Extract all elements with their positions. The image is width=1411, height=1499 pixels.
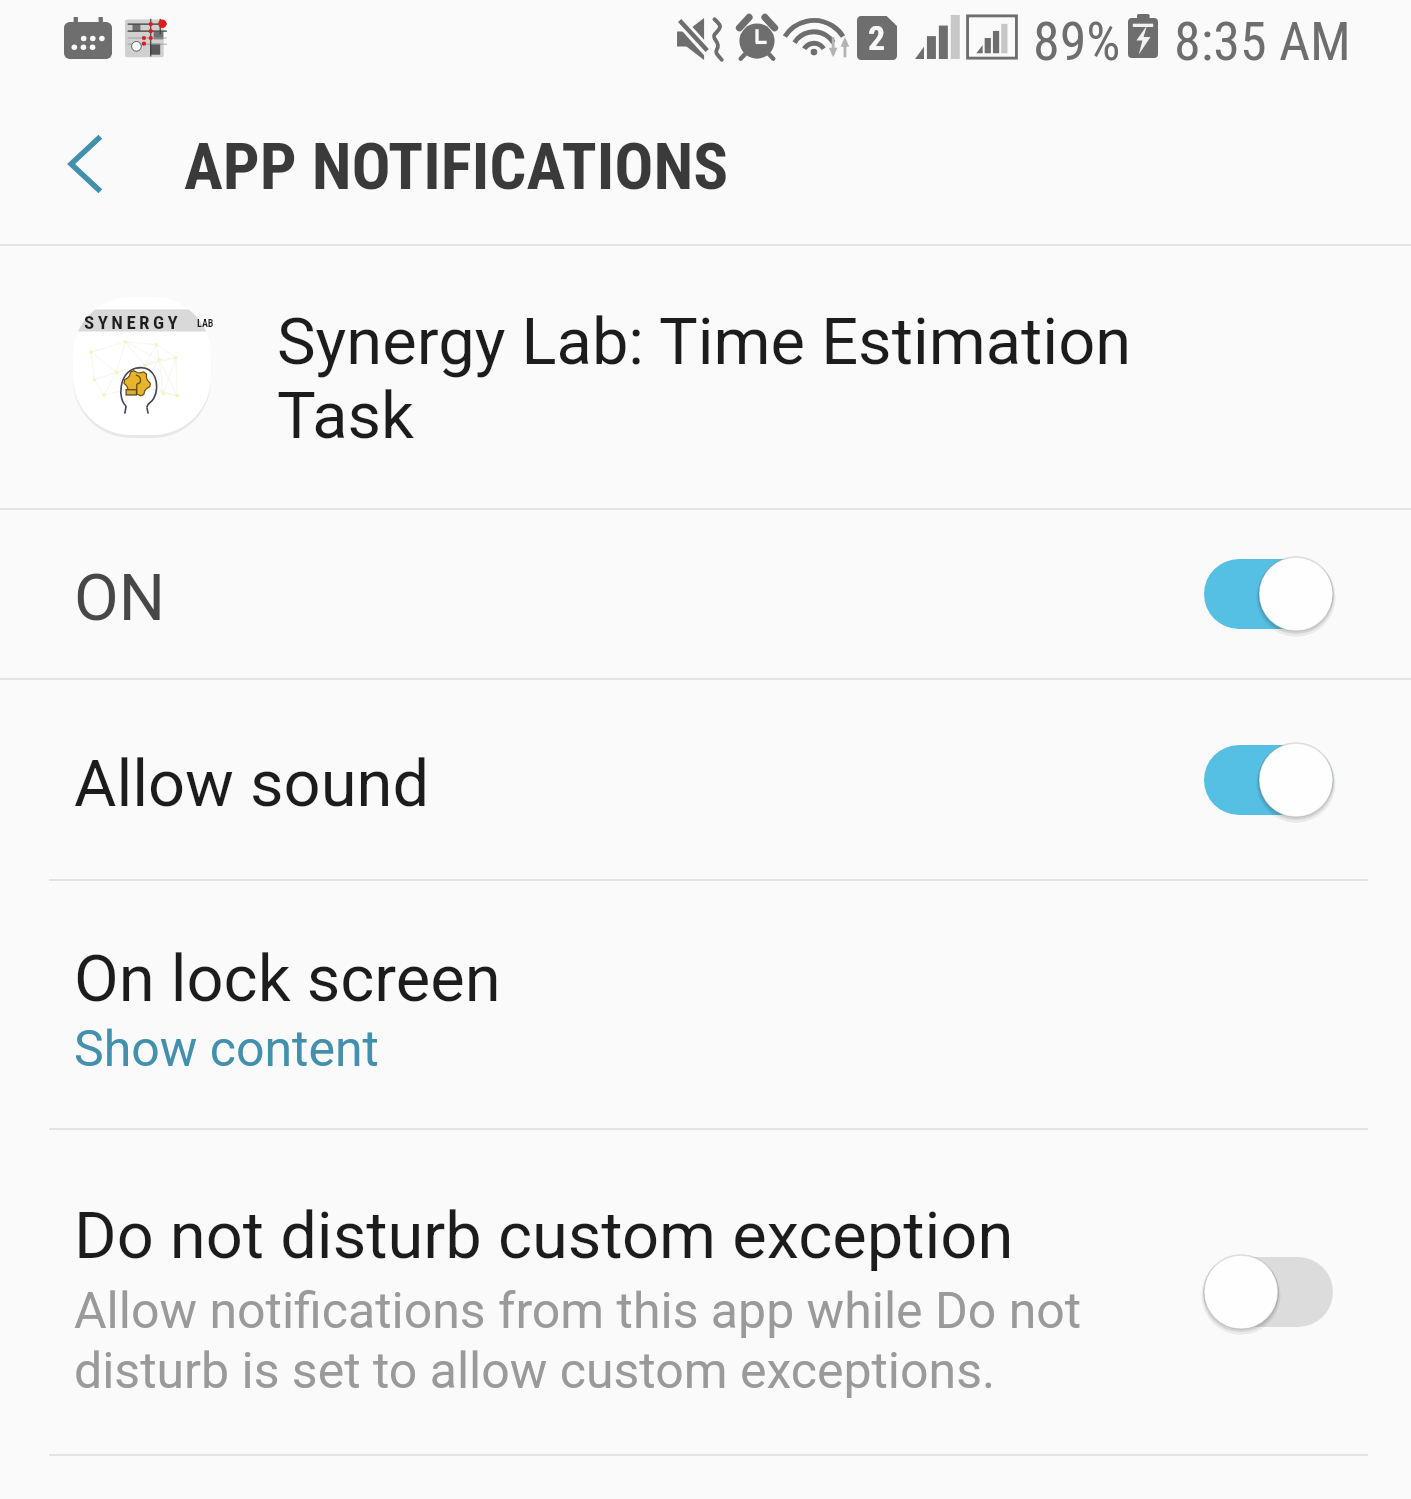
button[interactable]: ON xyxy=(0,509,1411,679)
staticText: 8:35 AM xyxy=(1174,10,1351,73)
button[interactable]: Do not disturb custom exception xyxy=(0,1129,1411,1455)
staticText: Allow sound xyxy=(74,746,430,822)
button[interactable]: Navigate up xyxy=(28,88,140,245)
button[interactable]: ON xyxy=(1204,554,1333,634)
button[interactable]: SYNERGY xyxy=(0,247,1411,509)
staticText: Do not disturb custom exception xyxy=(74,1198,1014,1274)
staticText: LAB xyxy=(197,318,214,330)
staticText: SYNERGY xyxy=(84,311,182,333)
staticText: Allow notifications from this app while … xyxy=(74,1282,1094,1400)
staticText: APP NOTIFICATIONS xyxy=(184,129,729,205)
button[interactable]: Allow sound xyxy=(1204,740,1333,820)
button[interactable]: On lock screen xyxy=(0,880,1411,1129)
button[interactable]: Do not disturb custom exception xyxy=(1204,1252,1333,1332)
button[interactable]: Allow sound xyxy=(0,679,1411,880)
staticText: Show content xyxy=(74,1020,379,1079)
staticText: 2 xyxy=(868,18,886,58)
staticText: Synergy Lab: Time Estimation Task xyxy=(277,304,1157,454)
staticText: On lock screen xyxy=(74,941,501,1017)
staticText: 89% xyxy=(1033,10,1121,73)
staticText: ON xyxy=(74,560,166,636)
